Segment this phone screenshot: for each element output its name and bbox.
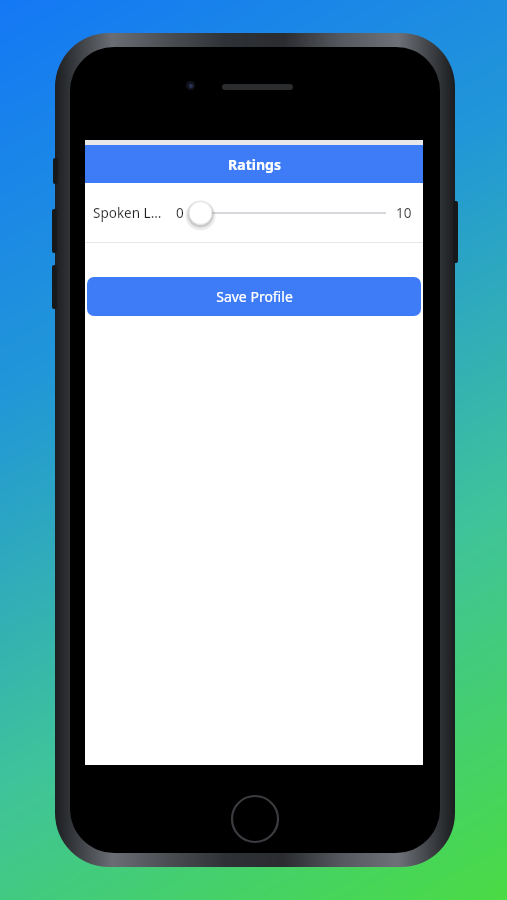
staticText: 10 (396, 204, 412, 222)
button[interactable]: Rating slider (189, 200, 388, 226)
staticText: Save Profile (216, 287, 293, 306)
button[interactable]: Spoken L... (85, 183, 423, 242)
staticText: Ratings (228, 155, 281, 174)
button[interactable]: Save Profile (87, 277, 421, 316)
staticText: Spoken L... (93, 204, 162, 222)
staticText: 0 (176, 204, 184, 222)
